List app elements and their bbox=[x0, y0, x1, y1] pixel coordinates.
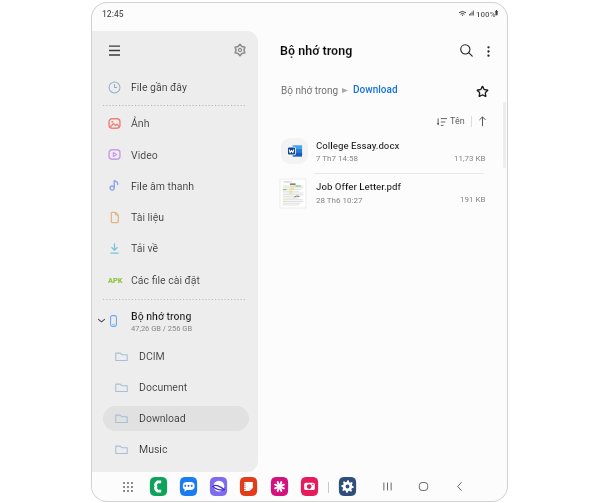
staticText: Music bbox=[139, 443, 168, 455]
button[interactable]: Sort ascending bbox=[472, 111, 492, 131]
staticText: 7 Th7 14:58 bbox=[316, 154, 358, 163]
button[interactable] bbox=[92, 306, 258, 336]
staticText: Ảnh bbox=[131, 117, 150, 129]
button[interactable]: Home bbox=[411, 474, 435, 498]
button[interactable] bbox=[92, 266, 258, 293]
button[interactable] bbox=[103, 344, 249, 369]
staticText: Bộ nhớ trong bbox=[131, 310, 192, 322]
button[interactable] bbox=[103, 437, 249, 462]
staticText: Bộ nhớ trong bbox=[281, 85, 339, 97]
staticText: Bộ nhớ trong bbox=[280, 43, 353, 58]
button[interactable]: Messages bbox=[179, 477, 198, 496]
button[interactable] bbox=[92, 235, 258, 262]
staticText: APK bbox=[108, 276, 123, 285]
button[interactable]: Phone bbox=[149, 477, 168, 496]
staticText: 28 Th6 10:27 bbox=[316, 196, 363, 205]
staticText: Các file cài đặt bbox=[131, 274, 200, 286]
button[interactable]: Download bbox=[353, 80, 398, 100]
staticText: Download bbox=[353, 84, 398, 96]
button[interactable]: Settings bbox=[338, 477, 357, 496]
button[interactable] bbox=[92, 204, 258, 231]
staticText: Document bbox=[139, 381, 188, 393]
staticText: Tải về bbox=[131, 242, 159, 254]
button[interactable] bbox=[434, 112, 467, 130]
button[interactable] bbox=[92, 141, 258, 168]
button[interactable]: Notes bbox=[239, 477, 258, 496]
button[interactable]: Search bbox=[454, 38, 478, 62]
button[interactable] bbox=[103, 375, 249, 400]
button[interactable]: All apps bbox=[116, 475, 140, 499]
staticText: Tài liệu bbox=[131, 211, 165, 223]
staticText: 100% bbox=[476, 10, 496, 19]
button[interactable]: Settings bbox=[229, 39, 251, 61]
staticText: Video bbox=[131, 149, 158, 161]
button[interactable] bbox=[92, 172, 258, 199]
staticText: 191 KB bbox=[460, 195, 486, 204]
staticText: Tên bbox=[450, 116, 465, 127]
button[interactable] bbox=[258, 174, 507, 213]
button[interactable]: Recents bbox=[375, 474, 399, 498]
button[interactable]: Camera bbox=[300, 477, 319, 496]
staticText: DCIM bbox=[139, 350, 165, 362]
button[interactable]: More options bbox=[478, 41, 498, 61]
button[interactable]: Add to Favourites bbox=[471, 80, 493, 102]
button[interactable]: Gallery bbox=[270, 477, 289, 496]
staticText: 47,26 GB / 256 GB bbox=[131, 324, 193, 333]
button[interactable] bbox=[92, 110, 258, 137]
staticText: 12:45 bbox=[102, 9, 124, 19]
staticText: 11,73 KB bbox=[454, 154, 486, 163]
button[interactable] bbox=[258, 133, 507, 172]
button[interactable] bbox=[103, 406, 249, 431]
staticText: File gần đây bbox=[131, 81, 187, 93]
button[interactable]: Bộ nhớ trong bbox=[280, 40, 353, 60]
button[interactable] bbox=[92, 74, 258, 101]
staticText: College Essay.docx bbox=[316, 140, 400, 151]
staticText: File âm thanh bbox=[131, 180, 195, 192]
staticText: Download bbox=[139, 412, 186, 424]
button[interactable]: Back bbox=[447, 474, 471, 498]
button[interactable]: Bộ nhớ trong bbox=[281, 81, 339, 101]
button[interactable]: Open navigation menu bbox=[103, 39, 125, 61]
staticText: Job Offer Letter.pdf bbox=[316, 181, 401, 192]
button[interactable]: Internet bbox=[209, 477, 228, 496]
